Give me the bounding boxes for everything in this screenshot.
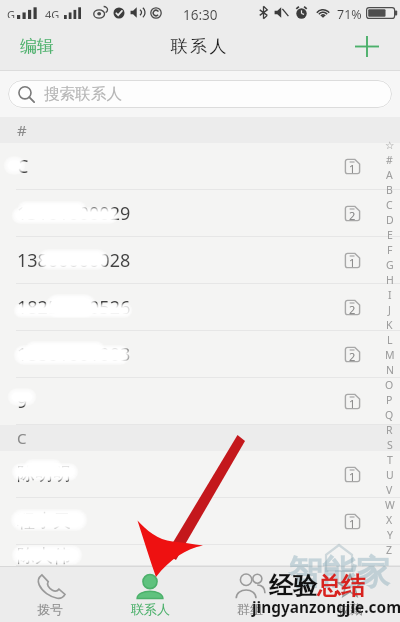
staticText: O — [385, 378, 394, 392]
button[interactable]: 陈明明 — [0, 451, 400, 498]
staticText: S — [387, 438, 393, 452]
staticText: M — [385, 348, 395, 362]
staticText: 联系人 — [131, 601, 170, 617]
staticText: 搜索联系人 — [44, 84, 122, 104]
button[interactable]: 搜索联系人 — [8, 80, 392, 108]
staticText: 1 — [349, 396, 356, 411]
staticText: V — [386, 483, 393, 497]
staticText: X — [386, 513, 393, 527]
staticText: 联系人 — [171, 36, 229, 57]
staticText: G — [386, 258, 394, 272]
staticText: R — [386, 423, 393, 437]
staticText: 13101000029 — [17, 201, 131, 226]
staticText: 总结 — [317, 571, 365, 601]
staticText: P — [386, 393, 393, 407]
button[interactable]: 程小天 — [0, 498, 400, 545]
button[interactable]: 13101000029 — [0, 190, 400, 237]
button[interactable]: 收藏 — [300, 566, 400, 622]
staticText: D — [386, 213, 394, 227]
staticText: 4G — [45, 7, 60, 18]
staticText: jingyanzongjie.com — [252, 597, 400, 618]
button[interactable]: Add contact — [341, 27, 400, 66]
staticText: J — [388, 303, 391, 317]
staticText: 1 — [349, 161, 356, 176]
staticText: 编辑 — [20, 36, 54, 57]
staticText: # — [386, 153, 393, 167]
button[interactable]: 群组 — [200, 566, 300, 622]
staticText: Q — [385, 408, 394, 422]
staticText: W — [385, 498, 395, 512]
staticText: K — [386, 318, 393, 332]
staticText: 71% — [337, 6, 362, 20]
button[interactable]: C — [0, 143, 400, 190]
staticText: 陈大伟 — [17, 545, 71, 566]
staticText: E — [387, 228, 393, 242]
staticText: 1 — [349, 516, 356, 531]
button[interactable]: 9 — [0, 378, 400, 425]
staticText: C — [17, 154, 29, 179]
staticText: 9 — [17, 389, 28, 414]
staticText: A — [386, 168, 393, 182]
staticText: C — [17, 428, 27, 448]
staticText: 收藏 — [337, 601, 363, 617]
button[interactable]: 拨号 — [0, 566, 100, 622]
staticText: F — [387, 243, 393, 257]
staticText: 18801001003 — [17, 342, 131, 367]
staticText: G — [7, 7, 15, 18]
staticText: N — [386, 363, 394, 377]
staticText: 2 — [349, 208, 356, 223]
button[interactable]: 18250000526 — [0, 284, 400, 331]
staticText: 拨号 — [37, 601, 63, 617]
staticText: L — [387, 333, 393, 347]
button[interactable]: 编辑 — [0, 27, 68, 66]
staticText: 2 — [349, 302, 356, 317]
staticText: 16:30 — [183, 6, 218, 20]
staticText: 群组 — [237, 601, 263, 617]
staticText: U — [386, 468, 394, 482]
staticText: C — [386, 198, 393, 212]
staticText: I — [388, 288, 392, 302]
staticText: 1 — [349, 469, 356, 484]
button[interactable]: 18801001003 — [0, 331, 400, 378]
staticText: 1 — [349, 255, 356, 270]
button[interactable]: 陈大伟 — [0, 545, 400, 566]
staticText: Z — [386, 543, 393, 557]
staticText: 18250000526 — [17, 295, 131, 320]
staticText: 智能家 — [288, 551, 390, 594]
staticText: Y — [387, 528, 393, 542]
staticText: # — [17, 120, 27, 140]
staticText: 程小天 — [17, 510, 71, 533]
staticText: H — [386, 273, 394, 287]
staticText: 2 — [349, 349, 356, 364]
button[interactable]: 联系人 — [100, 566, 200, 622]
button[interactable]: 13800000028 — [0, 237, 400, 284]
staticText: 陈明明 — [17, 463, 71, 486]
staticText: T — [387, 453, 393, 467]
staticText: B — [386, 183, 393, 197]
staticText: ☆ — [385, 139, 395, 151]
staticText: 经验 — [269, 571, 317, 601]
staticText: 13800000028 — [17, 248, 131, 273]
